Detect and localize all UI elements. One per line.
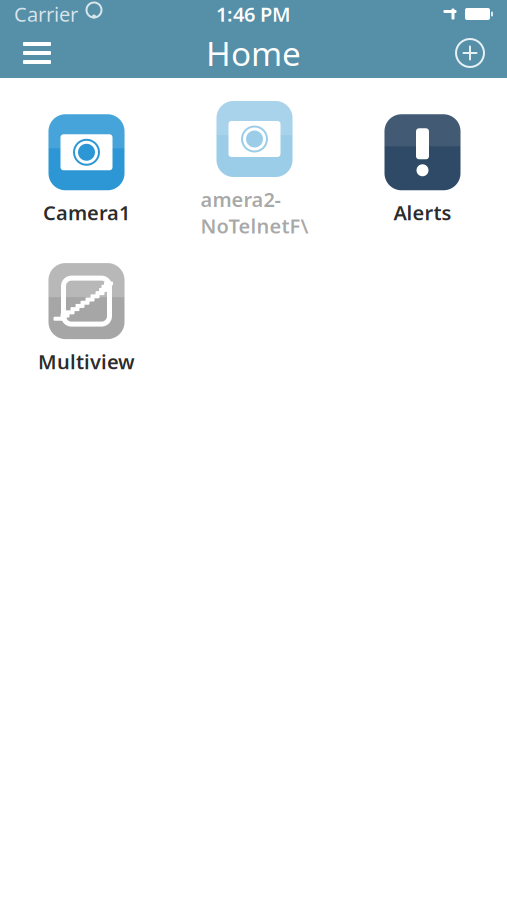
staticText: 1:46 PM: [216, 1, 291, 27]
button[interactable]: Camera1: [2, 114, 170, 226]
staticText: amera2-NoTelnetF\: [200, 186, 308, 239]
button[interactable]: amera2-NoTelnetF\: [170, 101, 338, 239]
button[interactable]: Multiview: [2, 263, 170, 375]
button[interactable]: Menu: [9, 28, 65, 78]
button[interactable]: Add: [442, 28, 498, 78]
staticText: Alerts: [393, 199, 451, 226]
staticText: Camera1: [43, 199, 130, 226]
staticText: Multiview: [38, 348, 135, 375]
button[interactable]: Alerts: [338, 114, 506, 226]
staticText: Home: [206, 31, 301, 75]
staticText: Carrier: [14, 1, 78, 27]
